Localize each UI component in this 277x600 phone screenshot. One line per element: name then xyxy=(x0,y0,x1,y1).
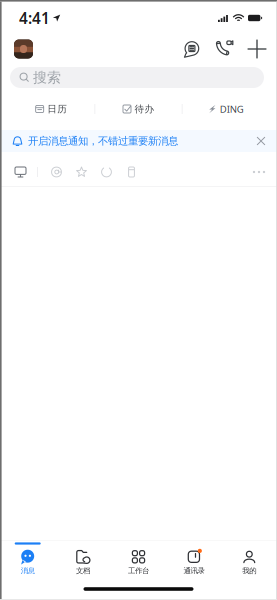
button[interactable]: Add xyxy=(241,34,273,64)
staticText: 待办 xyxy=(134,103,154,115)
button[interactable]: Recent xyxy=(94,160,119,184)
staticText: 开启消息通知，不错过重要新消息 xyxy=(28,135,178,147)
button[interactable]: 工作台 xyxy=(111,546,166,578)
staticText: 消息 xyxy=(21,566,35,575)
staticText: DING xyxy=(220,103,244,115)
staticText: 日历 xyxy=(47,103,67,115)
button[interactable]: 消息 xyxy=(0,546,55,578)
button[interactable]: 通讯录 xyxy=(166,546,222,578)
button[interactable]: 搜索 xyxy=(10,67,264,88)
staticText: 4:41 xyxy=(19,8,50,28)
staticText: 通讯录 xyxy=(183,566,204,575)
staticText: 搜索 xyxy=(33,69,61,86)
button[interactable]: 我的 xyxy=(222,546,277,578)
button[interactable]: Profile xyxy=(10,35,37,62)
button[interactable]: Archive xyxy=(119,160,144,184)
button[interactable]: Scan xyxy=(175,34,208,64)
button[interactable]: Devices xyxy=(4,160,37,184)
button[interactable]: Dismiss xyxy=(249,130,273,152)
staticText: 我的 xyxy=(242,566,256,575)
button[interactable]: Mentions xyxy=(44,160,69,184)
button[interactable]: DING xyxy=(183,98,269,120)
button[interactable]: Call xyxy=(208,34,241,64)
button[interactable]: 日历 xyxy=(8,98,94,120)
button[interactable]: 文档 xyxy=(55,546,111,578)
button[interactable]: 待办 xyxy=(95,98,182,120)
staticText: 文档 xyxy=(76,566,90,575)
staticText: 工作台 xyxy=(128,566,149,575)
button[interactable]: More xyxy=(244,160,274,184)
button[interactable]: Starred xyxy=(69,160,94,184)
